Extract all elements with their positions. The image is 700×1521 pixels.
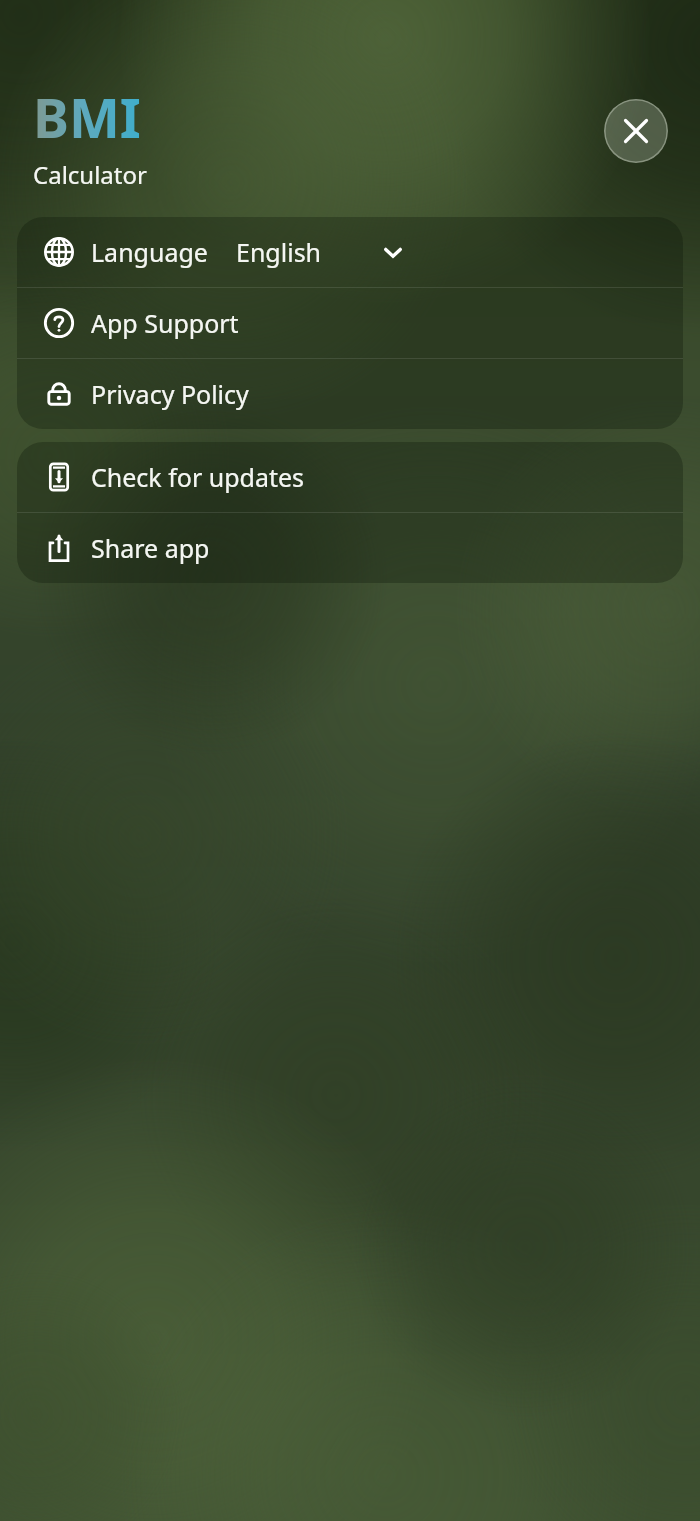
staticText: Calculator	[33, 158, 147, 190]
button[interactable]: Language	[17, 217, 683, 287]
staticText: BMI	[33, 80, 141, 154]
staticText: English	[236, 235, 322, 269]
button[interactable]: Check for updates	[17, 442, 683, 512]
staticText: Check for updates	[91, 460, 305, 494]
staticText: Language	[91, 235, 208, 269]
button[interactable]: App Support	[17, 288, 683, 358]
button[interactable]: Privacy Policy	[17, 359, 683, 429]
button[interactable]: Share app	[17, 513, 683, 583]
button[interactable]: Close	[604, 99, 668, 163]
staticText: Privacy Policy	[91, 377, 249, 411]
staticText: App Support	[91, 306, 239, 340]
staticText: Share app	[91, 531, 210, 565]
